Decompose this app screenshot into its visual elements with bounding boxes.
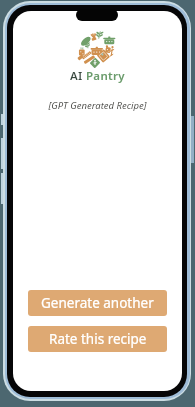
staticText: [GPT Generated Recipe] — [48, 99, 147, 112]
button[interactable]: Rate this recipe — [28, 326, 167, 352]
button[interactable]: Generate another — [28, 290, 167, 316]
staticText: AI — [70, 68, 86, 84]
staticText: Rate this recipe — [49, 330, 147, 348]
staticText: Generate another — [41, 294, 154, 312]
staticText: Pantry — [86, 68, 125, 84]
